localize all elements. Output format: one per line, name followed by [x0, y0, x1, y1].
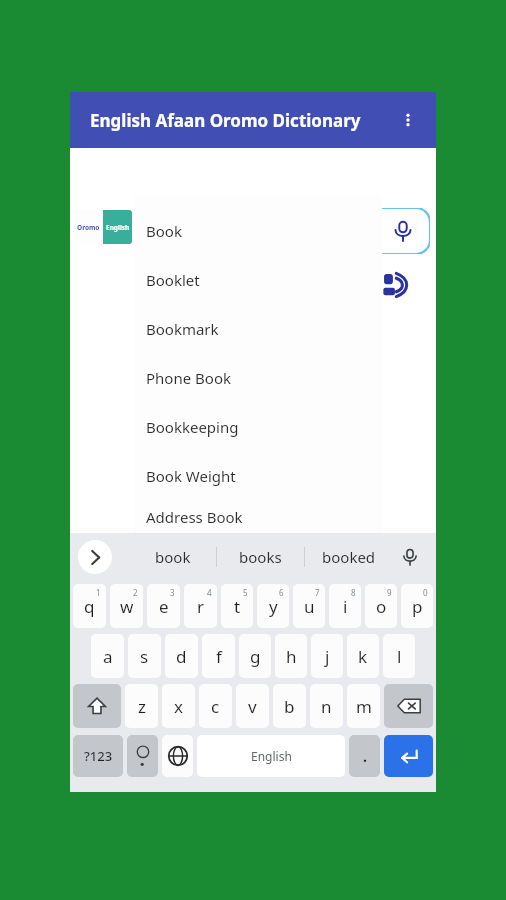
button[interactable]: e [147, 584, 180, 628]
staticText: Bookmark [146, 319, 219, 339]
button[interactable]: books [217, 535, 304, 579]
staticText: ?123 [84, 747, 113, 765]
button[interactable]: h [275, 634, 307, 678]
button[interactable]: booked [305, 535, 392, 579]
staticText: . [363, 747, 367, 766]
staticText: a [103, 645, 113, 668]
button[interactable]: c [199, 684, 232, 728]
staticText: e [159, 595, 169, 618]
staticText: 5 [243, 587, 248, 598]
button[interactable]: y [257, 584, 289, 628]
staticText: m [356, 695, 372, 718]
button[interactable]: j [311, 634, 343, 678]
staticText: Book [146, 221, 182, 241]
staticText: 8 [351, 587, 356, 598]
staticText: English Afaan Oromo Dictionary [90, 109, 361, 132]
button[interactable]: Shift [73, 684, 121, 728]
button[interactable]: s [128, 634, 161, 678]
staticText: r [197, 595, 205, 618]
staticText: h [286, 645, 297, 668]
button[interactable]: q [73, 584, 106, 628]
staticText: 4 [207, 587, 212, 598]
staticText: l [397, 645, 402, 668]
button[interactable]: Voice search [386, 214, 420, 248]
button[interactable]: Voice input [394, 541, 426, 573]
button[interactable]: t [221, 584, 253, 628]
staticText: z [138, 695, 146, 718]
button[interactable]: g [239, 634, 271, 678]
staticText: Bookkeeping [146, 417, 239, 437]
staticText: y [269, 595, 278, 618]
button[interactable]: Emoji [127, 735, 158, 777]
button[interactable]: z [125, 684, 158, 728]
button[interactable]: i [329, 584, 361, 628]
staticText: k [358, 645, 368, 668]
staticText: c [211, 695, 220, 718]
staticText: 1 [96, 587, 101, 598]
staticText: 2 [133, 587, 138, 598]
staticText: i [343, 595, 348, 618]
button[interactable]: b [273, 684, 306, 728]
staticText: Book Weight [146, 466, 236, 486]
button[interactable]: k [347, 634, 379, 678]
button[interactable]: d [165, 634, 198, 678]
button[interactable]: Phone Book [134, 353, 382, 402]
staticText: Oromo [77, 223, 100, 232]
staticText: 0 [423, 587, 428, 598]
staticText: English [106, 223, 130, 232]
button[interactable]: Change language [162, 735, 193, 777]
button[interactable]: ?123 [73, 735, 123, 777]
button[interactable]: Address Book [134, 500, 382, 533]
staticText: v [248, 695, 257, 718]
button[interactable]: Enter [384, 735, 433, 777]
button[interactable]: f [202, 634, 235, 678]
button[interactable]: l [383, 634, 415, 678]
staticText: w [120, 595, 134, 618]
staticText: 9 [387, 587, 392, 598]
staticText: g [250, 645, 261, 668]
button[interactable]: Book [134, 206, 382, 255]
button[interactable]: Oromo [74, 210, 132, 244]
button[interactable]: r [184, 584, 217, 628]
button[interactable]: w [110, 584, 143, 628]
button[interactable]: English [197, 735, 345, 777]
button[interactable]: Bookkeeping [134, 402, 382, 451]
button[interactable]: Speak [378, 264, 420, 306]
staticText: book [147, 218, 195, 244]
button[interactable]: p [401, 584, 433, 628]
button[interactable]: n [310, 684, 343, 728]
staticText: x [174, 695, 183, 718]
button[interactable]: book [136, 208, 430, 254]
button[interactable]: Booklet [134, 255, 382, 304]
button[interactable]: m [347, 684, 380, 728]
staticText: u [304, 595, 315, 618]
button[interactable]: v [236, 684, 269, 728]
button[interactable]: book [130, 535, 216, 579]
button[interactable]: a [91, 634, 124, 678]
staticText: book [155, 547, 191, 567]
staticText: Address Book [146, 507, 243, 527]
staticText: 6 [279, 587, 284, 598]
staticText: t [234, 595, 241, 618]
staticText: s [140, 645, 149, 668]
staticText: 7 [315, 587, 320, 598]
staticText: 3 [170, 587, 175, 598]
button[interactable]: Backspace [384, 684, 433, 728]
button[interactable]: More options [388, 100, 428, 140]
staticText: f [216, 645, 222, 668]
button[interactable]: u [293, 584, 325, 628]
staticText: booked [322, 547, 376, 567]
button[interactable]: Bookmark [134, 304, 382, 353]
button[interactable]: x [162, 684, 195, 728]
button[interactable]: Book Weight [134, 451, 382, 500]
button[interactable]: o [365, 584, 397, 628]
staticText: n [321, 695, 332, 718]
staticText: q [84, 595, 95, 618]
staticText: o [376, 595, 387, 618]
button[interactable]: More suggestions [78, 540, 112, 574]
staticText: Booklet [146, 270, 200, 290]
staticText: Phone Book [146, 368, 231, 388]
staticText: English [251, 748, 292, 764]
button[interactable]: . [349, 735, 380, 777]
